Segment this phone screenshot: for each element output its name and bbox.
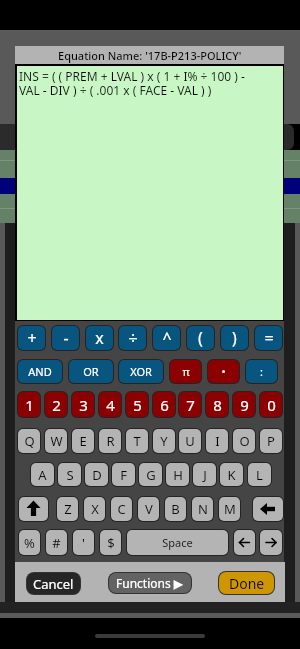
button[interactable]: OR xyxy=(69,360,113,383)
button[interactable]: % xyxy=(19,530,40,555)
button[interactable]: Move cursor left xyxy=(234,530,255,555)
button[interactable]: 7 xyxy=(179,392,201,417)
staticText: • xyxy=(221,364,226,379)
staticText: 6 xyxy=(160,395,169,415)
button[interactable]: 2 xyxy=(45,392,67,417)
staticText: ' xyxy=(82,534,85,552)
button[interactable]: O xyxy=(233,429,255,453)
button[interactable]: Move cursor right xyxy=(260,530,282,555)
staticText: 2 xyxy=(52,395,61,415)
staticText: A xyxy=(38,466,47,484)
button[interactable]: - xyxy=(52,326,79,350)
staticText: B xyxy=(171,500,180,518)
staticText: XOR xyxy=(130,364,152,379)
button[interactable]: 6 xyxy=(153,392,175,417)
button[interactable]: Q xyxy=(18,429,40,453)
button[interactable]: I xyxy=(206,429,228,453)
button[interactable]: Done xyxy=(219,572,274,594)
staticText: - xyxy=(63,327,69,349)
button[interactable]: 5 xyxy=(126,392,148,417)
button[interactable]: XOR xyxy=(119,360,163,383)
button[interactable]: M xyxy=(219,497,240,521)
staticText: I xyxy=(215,432,220,450)
button[interactable]: 3 xyxy=(72,392,94,417)
button[interactable]: P xyxy=(260,429,282,453)
button[interactable]: L xyxy=(248,463,271,486)
staticText: P xyxy=(267,432,275,450)
button[interactable]: D xyxy=(85,463,108,486)
button[interactable]: π xyxy=(170,360,201,383)
staticText: x xyxy=(95,327,104,349)
button[interactable]: $ xyxy=(100,530,121,555)
staticText: Q xyxy=(24,432,35,450)
staticText: ^ xyxy=(162,327,172,349)
staticText: C xyxy=(117,500,126,518)
button[interactable]: Cancel xyxy=(27,573,80,594)
button[interactable]: ' xyxy=(73,530,94,555)
button[interactable]: Functions ▶ xyxy=(109,573,191,593)
button[interactable]: S xyxy=(58,463,81,486)
button[interactable]: ) xyxy=(221,326,248,350)
button[interactable]: # xyxy=(46,530,67,555)
button[interactable]: 0 xyxy=(260,392,282,417)
staticText: X xyxy=(91,500,99,518)
staticText: K xyxy=(227,466,236,484)
button[interactable]: + xyxy=(18,326,45,350)
button[interactable]: H xyxy=(166,463,189,486)
staticText: H xyxy=(173,466,183,484)
staticText: W xyxy=(50,432,63,450)
button[interactable]: 8 xyxy=(206,392,228,417)
button[interactable]: = xyxy=(255,326,282,350)
staticText: R xyxy=(106,432,115,450)
button[interactable]: ÷ xyxy=(119,326,146,350)
button[interactable]: • xyxy=(208,360,239,383)
button[interactable]: G xyxy=(139,463,162,486)
button[interactable]: F xyxy=(112,463,135,486)
button[interactable]: 1 xyxy=(18,392,40,417)
staticText: 8 xyxy=(213,395,222,415)
button[interactable]: R xyxy=(99,429,121,453)
button[interactable]: ^ xyxy=(153,326,180,350)
staticText: π xyxy=(182,364,190,379)
button[interactable]: Backspace xyxy=(253,497,283,521)
button[interactable]: Shift xyxy=(19,497,48,521)
staticText: T xyxy=(133,432,141,450)
button[interactable]: W xyxy=(45,429,67,453)
button[interactable]: x xyxy=(86,326,113,350)
button[interactable]: C xyxy=(111,497,132,521)
button[interactable]: ( xyxy=(187,326,214,350)
button[interactable]: U xyxy=(179,429,201,453)
button[interactable]: V xyxy=(138,497,159,521)
button[interactable]: J xyxy=(193,463,216,486)
staticText: ( xyxy=(198,327,203,349)
staticText: M xyxy=(224,500,236,518)
staticText: E xyxy=(79,432,87,450)
staticText: 4 xyxy=(106,395,115,415)
staticText: Z xyxy=(64,500,72,518)
staticText: Functions ▶ xyxy=(116,575,184,591)
staticText: 9 xyxy=(240,395,249,415)
button[interactable]: Y xyxy=(153,429,175,453)
button[interactable]: B xyxy=(165,497,186,521)
staticText: : xyxy=(260,364,263,379)
staticText: N xyxy=(198,500,208,518)
staticText: G xyxy=(146,466,156,484)
button[interactable]: 4 xyxy=(99,392,121,417)
button[interactable]: Space xyxy=(127,530,228,555)
staticText: Done xyxy=(229,574,265,593)
staticText: J xyxy=(203,466,207,484)
button[interactable]: : xyxy=(246,360,277,383)
button[interactable]: Z xyxy=(57,497,78,521)
staticText: = xyxy=(264,327,274,349)
button[interactable]: N xyxy=(192,497,213,521)
button[interactable]: K xyxy=(220,463,243,486)
button[interactable]: 9 xyxy=(233,392,255,417)
button[interactable]: AND xyxy=(18,360,62,383)
staticText: L xyxy=(256,466,263,484)
button[interactable]: X xyxy=(84,497,105,521)
button[interactable]: E xyxy=(72,429,94,453)
button[interactable]: A xyxy=(31,463,54,486)
button[interactable]: T xyxy=(126,429,148,453)
staticText: Space xyxy=(162,535,193,550)
staticText: 1 xyxy=(25,395,34,415)
